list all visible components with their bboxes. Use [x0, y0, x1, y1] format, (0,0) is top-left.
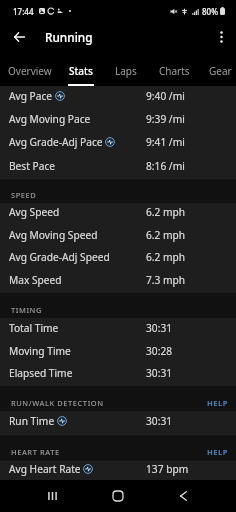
staticText: 30:31: [146, 366, 173, 380]
button[interactable]: Avg Grade-Adj Pace: [0, 132, 236, 156]
staticText: HEART RATE: [11, 447, 60, 457]
staticText: HELP: [207, 398, 228, 408]
staticText: Avg Grade-Adj Pace: [9, 135, 103, 149]
staticText: TIMING: [11, 305, 42, 315]
staticText: 7.3 mph: [146, 273, 186, 287]
button[interactable]: Avg Heart Rate: [0, 461, 236, 480]
button[interactable]: Charts: [152, 54, 196, 86]
staticText: Avg Grade-Adj Speed: [9, 250, 110, 264]
button[interactable]: Run Time: [0, 411, 236, 435]
button[interactable]: Back: [163, 480, 204, 512]
button[interactable]: Total Time: [0, 318, 236, 341]
staticText: Gear: [209, 64, 232, 78]
button[interactable]: Avg Pace: [0, 86, 236, 109]
staticText: Best Pace: [9, 159, 56, 173]
button[interactable]: HELP: [207, 447, 228, 457]
button[interactable]: Overview: [5, 54, 55, 86]
staticText: Avg Pace: [9, 89, 53, 103]
staticText: Total Time: [9, 321, 59, 335]
staticText: 8:16 /mi: [146, 159, 185, 173]
staticText: 9:40 /mi: [146, 89, 185, 103]
staticText: Max Speed: [9, 273, 62, 287]
staticText: Charts: [159, 64, 190, 78]
staticText: Elapsed Time: [9, 366, 73, 380]
staticText: 6.2 mph: [146, 228, 186, 242]
button[interactable]: HELP: [207, 398, 228, 408]
staticText: Run Time: [9, 414, 55, 428]
staticText: Avg Speed: [9, 205, 60, 219]
button[interactable]: Back: [6, 24, 32, 50]
button[interactable]: Max Speed: [0, 270, 236, 293]
button[interactable]: Home: [97, 480, 138, 512]
staticText: HELP: [207, 447, 228, 457]
button[interactable]: Recent apps: [32, 480, 73, 512]
staticText: 17:44: [13, 6, 34, 17]
staticText: SPEED: [11, 190, 37, 200]
button[interactable]: Avg Moving Pace: [0, 109, 236, 132]
button[interactable]: Gear: [205, 54, 236, 86]
staticText: 30:31: [146, 414, 173, 428]
staticText: Stats: [69, 64, 93, 78]
staticText: 6.2 mph: [146, 205, 186, 219]
staticText: Avg Heart Rate: [9, 462, 81, 476]
staticText: Avg Moving Pace: [9, 112, 91, 126]
staticText: 30:28: [146, 344, 173, 358]
staticText: Moving Time: [9, 344, 71, 358]
staticText: Laps: [115, 64, 137, 78]
button[interactable]: More options: [208, 24, 234, 50]
button[interactable]: Moving Time: [0, 341, 236, 364]
staticText: 80%: [202, 6, 218, 17]
button[interactable]: Elapsed Time: [0, 364, 236, 386]
button[interactable]: Best Pace: [0, 156, 236, 179]
button[interactable]: Stats: [61, 54, 101, 86]
staticText: Overview: [8, 64, 52, 78]
staticText: 9:41 /mi: [146, 135, 185, 149]
staticText: 30:31: [146, 321, 173, 335]
staticText: Running: [45, 29, 93, 45]
staticText: RUN/WALK DETECTION: [11, 398, 104, 408]
staticText: 6.2 mph: [146, 250, 186, 264]
staticText: Avg Moving Speed: [9, 228, 98, 242]
staticText: 137 bpm: [146, 462, 189, 476]
button[interactable]: Laps: [107, 54, 145, 86]
staticText: 9:39 /mi: [146, 112, 185, 126]
button[interactable]: Avg Moving Speed: [0, 225, 236, 248]
button[interactable]: Avg Speed: [0, 203, 236, 225]
button[interactable]: Avg Grade-Adj Speed: [0, 248, 236, 270]
